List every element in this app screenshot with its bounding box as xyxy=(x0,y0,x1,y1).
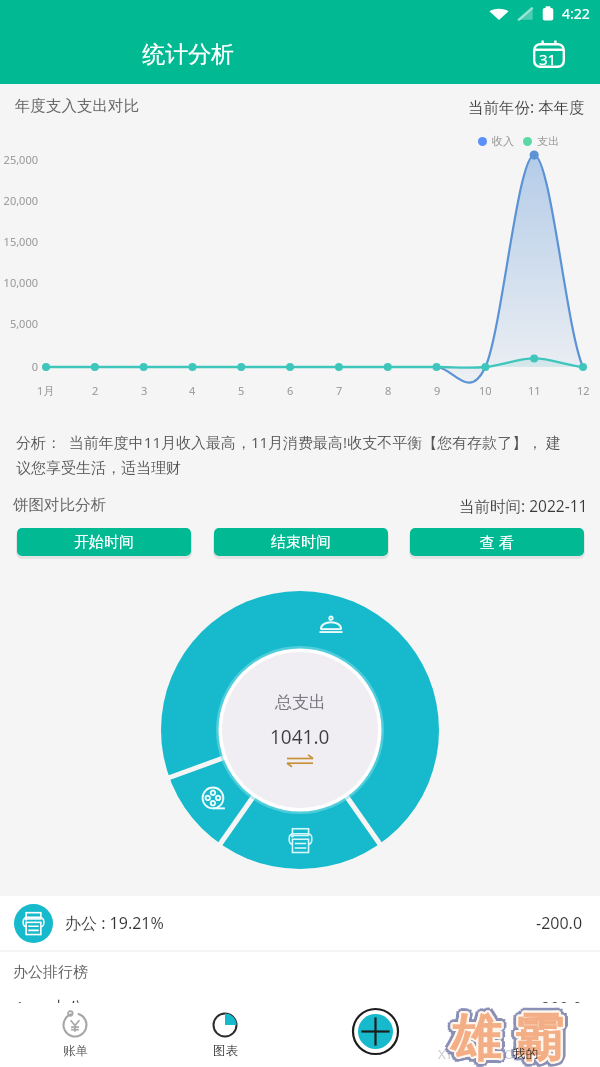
staticText: 12 xyxy=(577,383,590,398)
staticText: 雄霸 xyxy=(445,1004,571,1067)
staticText: 雄霸 xyxy=(445,1009,571,1067)
staticText: 0 xyxy=(31,359,38,374)
button[interactable]: Calendar xyxy=(528,35,570,77)
staticText: 雄霸 xyxy=(439,1008,565,1067)
staticText: 雄霸 xyxy=(442,1005,568,1067)
staticText: 当前时间: 2022-11 xyxy=(459,495,588,516)
staticText: 5,000 xyxy=(9,316,38,331)
staticText: 雄霸 xyxy=(446,1010,572,1067)
staticText: 雄霸 xyxy=(447,1011,573,1067)
staticText: 办公 xyxy=(52,998,84,1018)
staticText: 年度支入支出对比 xyxy=(15,96,139,116)
staticText: 开始时间 xyxy=(74,533,134,552)
staticText: 支出 xyxy=(537,134,559,148)
staticText: 结束时间 xyxy=(271,533,331,552)
staticText: 4:22 xyxy=(562,4,590,23)
staticText: 1月 xyxy=(37,383,55,398)
staticText: 4 xyxy=(189,383,196,398)
staticText: 10 xyxy=(479,383,492,398)
staticText: 雄霸 xyxy=(442,1012,568,1067)
staticText: 7 xyxy=(336,383,343,398)
button[interactable]: 1 xyxy=(0,997,600,1019)
staticText: 2 xyxy=(92,383,99,398)
staticText: 雄霸 xyxy=(446,1008,572,1067)
staticText: 8 xyxy=(385,383,392,398)
staticText: 雄霸 xyxy=(443,1005,569,1067)
button[interactable]: Add xyxy=(352,1008,399,1055)
staticText: 办公排行榜 xyxy=(13,963,88,982)
staticText: 200.0 xyxy=(541,997,582,1019)
staticText: 分析： 当前年度中11月收入最高，11月消费最高!收支不平衡【您有存款了】， 建… xyxy=(16,432,572,477)
staticText: 办公 : 19.21% xyxy=(65,912,164,934)
staticText: 10,000 xyxy=(3,275,38,290)
staticText: 查 看 xyxy=(480,532,514,552)
staticText: 统计分析 xyxy=(142,40,234,69)
staticText: 5 xyxy=(238,383,245,398)
staticText: 当前年份: 本年度 xyxy=(468,96,585,117)
staticText: -200.0 xyxy=(536,912,583,934)
staticText: 15,000 xyxy=(3,234,38,249)
staticText: 雄霸 xyxy=(443,1004,569,1067)
button[interactable]: 开始时间 xyxy=(17,528,191,556)
staticText: 雄霸 xyxy=(444,1010,570,1067)
staticText: 我的 xyxy=(513,1043,538,1059)
staticText: 31 xyxy=(539,49,557,69)
staticText: 雄霸 xyxy=(439,1005,565,1067)
staticText: 雄霸 xyxy=(444,1012,570,1067)
staticText: 我的 xyxy=(513,1046,538,1062)
staticText: 雄霸 xyxy=(448,1009,574,1067)
staticText: 雄霸 xyxy=(446,1007,572,1067)
staticText: 1 xyxy=(15,997,25,1019)
button[interactable]: 查 看 xyxy=(410,528,584,556)
staticText: 雄霸 xyxy=(446,1005,572,1067)
staticText: 雄霸 xyxy=(442,1006,568,1067)
staticText: 饼图对比分析 xyxy=(13,495,106,515)
staticText: 11 xyxy=(528,383,541,398)
staticText: 雄霸 xyxy=(446,1006,572,1067)
staticText: 雄霸 xyxy=(441,1006,567,1067)
staticText: 9 xyxy=(434,383,441,398)
staticText: 6 xyxy=(287,383,294,398)
staticText: 雄霸 xyxy=(444,1007,570,1067)
staticText: 1041.0 xyxy=(270,724,330,750)
staticText: 雄霸 xyxy=(442,1007,568,1067)
staticText: 雄霸 xyxy=(444,1005,570,1067)
button[interactable]: 图表 xyxy=(164,1003,286,1067)
staticText: 雄霸 xyxy=(447,1009,573,1067)
staticText: 3 xyxy=(141,383,148,398)
button[interactable]: 办公 : 19.21% xyxy=(0,896,600,950)
staticText: 雄霸 xyxy=(448,1003,574,1066)
staticText: 雄霸 xyxy=(443,1008,569,1067)
staticText: 雄霸 xyxy=(441,1003,567,1066)
staticText: 雄霸 xyxy=(443,1010,569,1067)
staticText: 雄霸 xyxy=(445,1002,571,1065)
staticText: 收入 xyxy=(492,134,514,148)
button[interactable]: 我的 xyxy=(464,1003,586,1067)
staticText: 雄霸 xyxy=(447,1007,573,1067)
staticText: 20,000 xyxy=(3,193,38,208)
staticText: 雄霸 xyxy=(441,1009,567,1067)
staticText: 雄霸 xyxy=(445,1005,571,1067)
staticText: 雄霸 xyxy=(444,1009,570,1067)
staticText: 账单 xyxy=(63,1043,88,1059)
staticText: 雄霸 xyxy=(449,1007,575,1067)
staticText: 总支出 xyxy=(275,692,326,713)
staticText: 雄霸 xyxy=(443,1002,569,1065)
staticText: 雄霸 xyxy=(441,1007,567,1067)
staticText: XYNR123.COM xyxy=(438,1045,526,1063)
button[interactable]: 账单 xyxy=(14,1003,136,1067)
staticText: 雄霸 xyxy=(447,1006,573,1067)
staticText: 雄霸 xyxy=(440,1010,566,1067)
staticText: 图表 xyxy=(213,1043,238,1059)
staticText: 25,000 xyxy=(3,152,38,167)
button[interactable]: 结束时间 xyxy=(214,528,388,556)
staticText: 雄霸 xyxy=(449,1006,575,1067)
